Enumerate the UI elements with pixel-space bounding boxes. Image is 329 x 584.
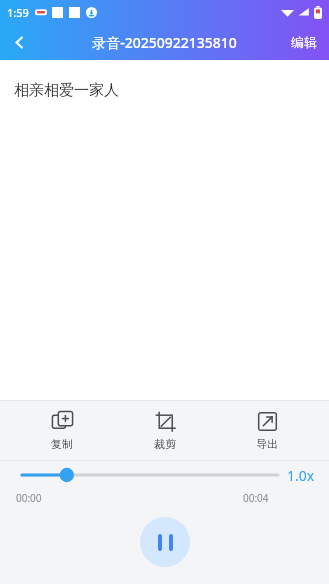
staticText: 录音-20250922135810: [92, 33, 237, 52]
button[interactable]: 导出: [227, 407, 307, 455]
button[interactable]: 编辑: [279, 24, 329, 60]
staticText: 导出: [256, 437, 278, 451]
button[interactable]: Back: [0, 24, 38, 60]
staticText: 相亲相爱一家人: [14, 81, 119, 100]
button[interactable]: 裁剪: [125, 407, 205, 455]
staticText: 1:59: [7, 5, 29, 20]
button[interactable]: [22, 464, 278, 486]
staticText: 00:00: [16, 491, 42, 505]
button[interactable]: Pause: [140, 517, 190, 567]
button[interactable]: 1.0x: [287, 466, 315, 485]
staticText: 00:04: [243, 491, 269, 505]
staticText: 编辑: [291, 34, 317, 50]
button[interactable]: 复制: [22, 407, 102, 455]
staticText: 裁剪: [154, 437, 176, 451]
staticText: 复制: [51, 437, 73, 451]
